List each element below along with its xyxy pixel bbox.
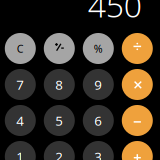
button[interactable]: 8 <box>44 69 75 100</box>
button[interactable]: Multiply <box>122 69 153 100</box>
button[interactable]: Plus minus <box>44 33 75 64</box>
staticText: 6 <box>94 112 102 129</box>
button[interactable]: 5 <box>44 105 75 136</box>
staticText: 9 <box>94 76 102 93</box>
staticText: 2 <box>55 148 63 160</box>
button[interactable]: 7 <box>5 69 36 100</box>
staticText: 5 <box>55 112 63 129</box>
button[interactable]: 3 <box>83 141 114 160</box>
button[interactable]: 4 <box>5 105 36 136</box>
staticText: 8 <box>55 76 63 93</box>
staticText: C <box>17 41 24 56</box>
button[interactable]: 9 <box>83 69 114 100</box>
button[interactable]: % <box>83 33 114 64</box>
button[interactable]: 1 <box>5 141 36 160</box>
button[interactable]: Minus <box>122 105 153 136</box>
staticText: 7 <box>16 76 24 93</box>
button[interactable]: C <box>5 33 36 64</box>
button[interactable]: 6 <box>83 105 114 136</box>
staticText: 3 <box>94 148 102 160</box>
staticText: 4 <box>16 112 24 129</box>
staticText: 450 <box>88 0 142 26</box>
staticText: 1 <box>16 148 24 160</box>
button[interactable]: Plus <box>122 141 153 160</box>
button[interactable]: Divide <box>122 33 153 64</box>
staticText: % <box>94 41 103 56</box>
button[interactable]: 2 <box>44 141 75 160</box>
